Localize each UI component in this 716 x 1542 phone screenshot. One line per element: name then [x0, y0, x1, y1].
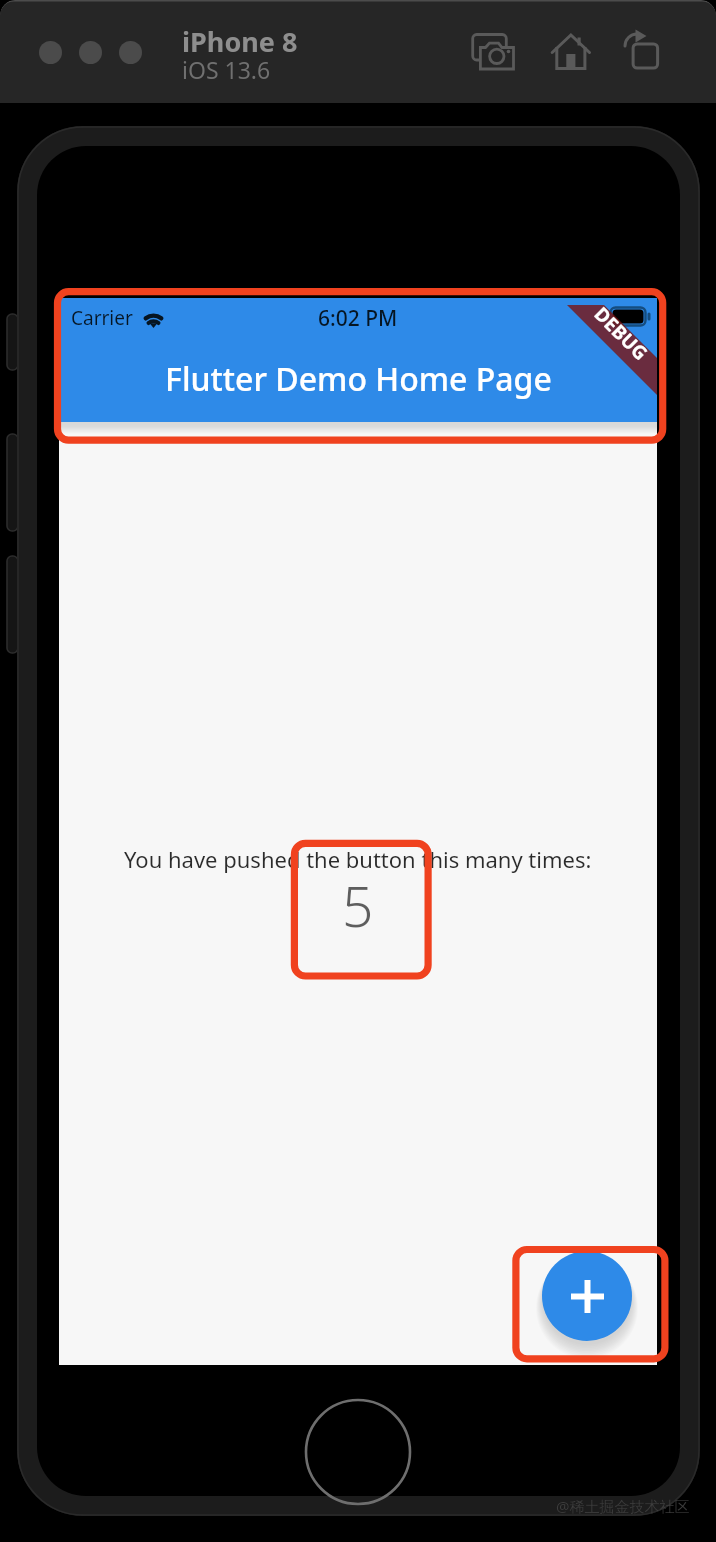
staticText: @稀土掘金技术社区	[556, 1496, 690, 1516]
button[interactable]: Increment	[542, 1251, 632, 1341]
button[interactable]: Screenshot	[466, 25, 518, 77]
staticText: 5	[342, 868, 374, 943]
button[interactable]: Home	[544, 25, 596, 77]
staticText: Carrier	[71, 305, 133, 331]
staticText: Flutter Demo Home Page	[165, 357, 552, 401]
staticText: 6:02 PM	[318, 304, 398, 333]
staticText: You have pushed the button this many tim…	[124, 844, 592, 874]
staticText: iPhone 8	[182, 23, 298, 60]
button[interactable]: Rotate	[618, 25, 670, 77]
staticText: iOS 13.6	[182, 54, 271, 85]
staticText: DEBUG	[590, 301, 654, 365]
